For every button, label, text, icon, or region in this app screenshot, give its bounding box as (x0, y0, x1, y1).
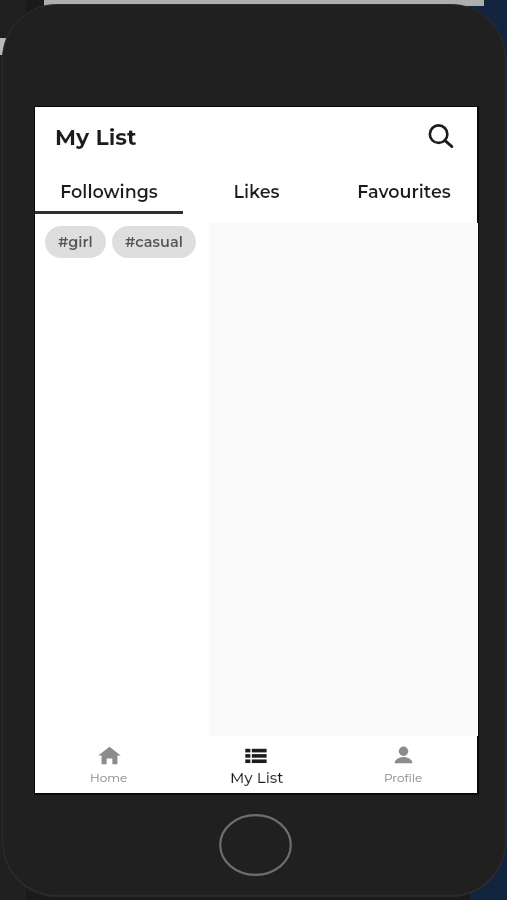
button[interactable]: #girl (45, 226, 106, 258)
button[interactable]: Likes (183, 168, 330, 214)
staticText: #girl (58, 233, 93, 251)
staticText: #casual (125, 233, 183, 251)
staticText: My List (55, 124, 137, 151)
button[interactable]: Followings (35, 168, 183, 214)
staticText: My List (230, 768, 284, 786)
button[interactable]: Favourites (330, 168, 477, 214)
staticText: Followings (60, 181, 158, 202)
button[interactable]: Search (425, 122, 457, 154)
staticText: Profile (384, 770, 423, 785)
staticText: Favourites (357, 181, 451, 202)
staticText: Home (90, 770, 128, 785)
button[interactable]: Profile (330, 735, 477, 793)
button[interactable]: #casual (112, 226, 196, 258)
button[interactable]: My List (183, 735, 330, 793)
staticText: Likes (233, 181, 280, 202)
button[interactable]: Home (35, 735, 183, 793)
